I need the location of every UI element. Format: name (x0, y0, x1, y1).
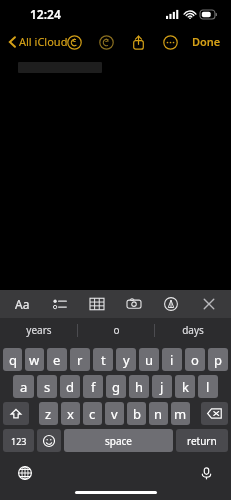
staticText: c (89, 405, 96, 423)
staticText: k (182, 378, 189, 396)
staticText: v (111, 405, 118, 423)
staticText: r (77, 351, 83, 369)
staticText: All iCloud (19, 34, 68, 49)
button[interactable]: Dictation (195, 462, 217, 484)
button[interactable]: s (37, 375, 57, 398)
staticText: 123 (11, 435, 27, 447)
button[interactable]: Checklist (45, 291, 75, 317)
button[interactable]: All iCloud (7, 31, 70, 52)
button[interactable]: Markup (156, 291, 186, 317)
staticText: t (101, 351, 106, 369)
staticText: Aa (15, 296, 30, 312)
staticText: f (91, 378, 96, 396)
staticText: q (9, 351, 17, 369)
button[interactable]: x (61, 402, 80, 425)
button[interactable]: d (60, 375, 80, 398)
button[interactable]: Aa (7, 291, 37, 317)
button[interactable]: Emoji (37, 429, 61, 452)
staticText: w (29, 351, 40, 369)
button[interactable]: r (70, 348, 90, 371)
button[interactable]: u (139, 348, 159, 371)
button[interactable]: y (116, 348, 136, 371)
button[interactable]: space (64, 429, 173, 452)
button[interactable]: Camera (119, 291, 149, 317)
button[interactable]: a (13, 375, 34, 398)
staticText: years (26, 323, 52, 337)
button[interactable]: i (162, 348, 182, 371)
button[interactable]: n (149, 402, 168, 425)
button[interactable]: Backspace (201, 402, 228, 425)
button[interactable]: Undo (64, 32, 84, 52)
staticText: o (191, 351, 199, 369)
staticText: n (154, 405, 163, 423)
staticText: x (67, 405, 74, 423)
staticText: e (53, 351, 61, 369)
button[interactable]: 123 (3, 429, 34, 452)
button[interactable]: c (83, 402, 102, 425)
button[interactable]: Table (82, 291, 112, 317)
staticText: b (133, 405, 141, 423)
button[interactable]: days (155, 318, 231, 342)
staticText: u (145, 351, 154, 369)
button[interactable]: Share (128, 32, 148, 52)
button[interactable]: Done (190, 31, 223, 52)
button[interactable]: w (25, 348, 44, 371)
staticText: j (160, 378, 164, 396)
button[interactable]: l (198, 375, 218, 398)
button[interactable]: Change keyboard (14, 462, 36, 484)
button[interactable]: b (127, 402, 146, 425)
button[interactable]: Redo (96, 32, 116, 52)
staticText: days (182, 323, 204, 337)
staticText: m (174, 405, 187, 423)
button[interactable]: v (105, 402, 124, 425)
button[interactable]: z (39, 402, 58, 425)
staticText: 12:24 (30, 6, 61, 22)
staticText: i (170, 351, 174, 369)
button[interactable]: f (83, 375, 103, 398)
button[interactable]: q (3, 348, 22, 371)
staticText: h (135, 378, 144, 396)
staticText: g (112, 378, 120, 396)
button[interactable]: h (129, 375, 149, 398)
button[interactable]: Close keyboard (194, 291, 224, 317)
button[interactable]: t (93, 348, 113, 371)
button[interactable]: e (47, 348, 67, 371)
staticText: s (44, 378, 51, 396)
button[interactable]: k (175, 375, 195, 398)
button[interactable]: years (0, 318, 77, 342)
staticText: p (214, 351, 222, 369)
staticText: space (105, 434, 132, 448)
button[interactable]: o (185, 348, 205, 371)
staticText: z (45, 405, 52, 423)
button[interactable]: Shift (3, 402, 29, 425)
button[interactable]: return (176, 429, 228, 452)
staticText: d (66, 378, 74, 396)
button[interactable]: More (160, 32, 180, 52)
button[interactable]: m (171, 402, 190, 425)
staticText: a (20, 378, 28, 396)
staticText: y (123, 351, 130, 369)
button[interactable]: p (208, 348, 228, 371)
button[interactable]: o (78, 318, 154, 342)
button[interactable]: j (152, 375, 172, 398)
button[interactable]: g (106, 375, 126, 398)
staticText: o (113, 323, 120, 337)
staticText: return (187, 434, 217, 448)
staticText: Done (192, 34, 221, 49)
staticText: l (206, 378, 210, 396)
